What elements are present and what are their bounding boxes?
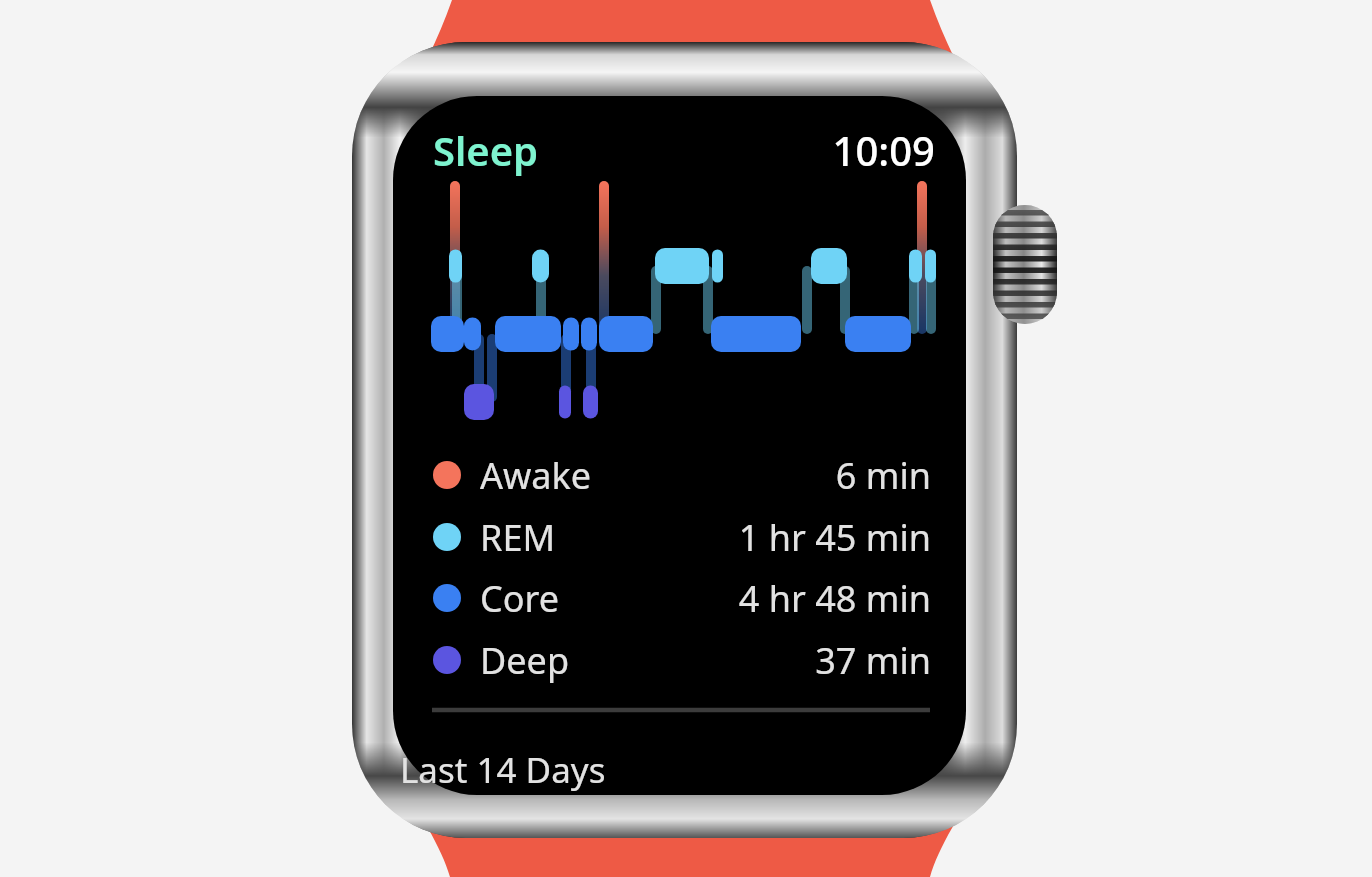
staticText: Awake	[480, 451, 592, 500]
button[interactable]: Deep	[433, 634, 931, 686]
staticText: 6 min	[592, 451, 931, 500]
staticText: Last 14 Days	[400, 746, 606, 794]
staticText: 10:09	[790, 123, 935, 177]
staticText: 37 min	[570, 636, 931, 685]
staticText: Core	[480, 574, 559, 623]
button[interactable]: REM	[433, 511, 931, 563]
button[interactable]: Sleep	[433, 123, 539, 177]
button[interactable]: Last 14 Days	[430, 746, 850, 796]
button[interactable]: Awake	[433, 449, 931, 501]
staticText: 4 hr 48 min	[559, 574, 931, 623]
staticText: REM	[480, 513, 556, 562]
staticText: 1 hr 45 min	[556, 513, 931, 562]
staticText: Sleep	[433, 123, 539, 177]
staticText: Deep	[480, 636, 570, 685]
button[interactable]: Core	[433, 572, 931, 624]
